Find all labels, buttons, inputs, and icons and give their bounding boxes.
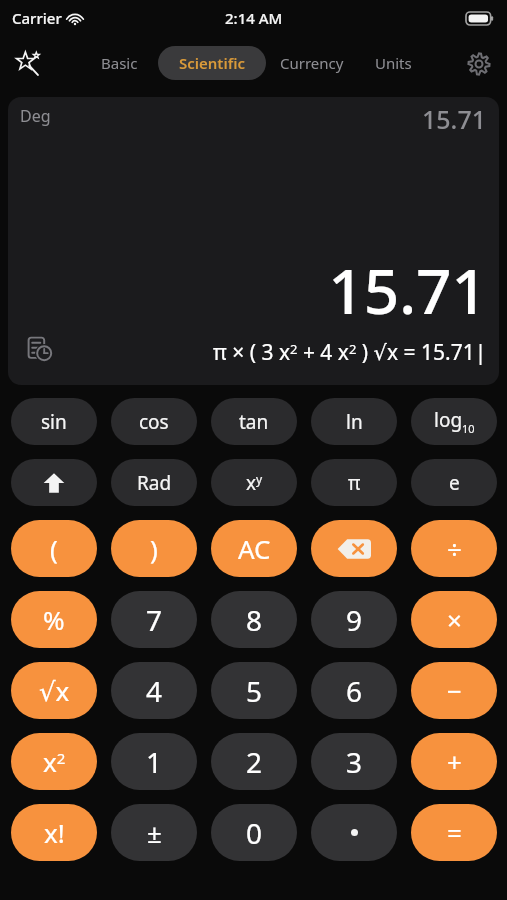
staticText: 6 — [346, 672, 363, 710]
button[interactable]: Settings — [459, 44, 499, 84]
button[interactable]: Backspace — [311, 520, 397, 577]
staticText: 9 — [346, 601, 363, 639]
button[interactable]: 8 — [211, 591, 297, 648]
staticText: sin — [41, 409, 67, 435]
staticText: log10 — [434, 407, 475, 436]
button[interactable]: 3 — [311, 733, 397, 790]
button[interactable]: = — [411, 804, 497, 861]
staticText: Carrier — [12, 8, 62, 28]
button[interactable]: ÷ — [411, 520, 497, 577]
staticText: x! — [44, 815, 65, 850]
staticText: π × ( 3 x2 + 4 x2 ) √x = 15.71| — [213, 338, 487, 367]
button[interactable]: + — [411, 733, 497, 790]
button[interactable]: AC — [211, 520, 297, 577]
button[interactable]: ( — [11, 520, 97, 577]
staticText: xy — [246, 470, 263, 496]
staticText: 1 — [146, 743, 163, 781]
button[interactable]: 6 — [311, 662, 397, 719]
staticText: π — [348, 470, 361, 496]
button[interactable]: π — [311, 459, 397, 506]
staticText: 2 — [246, 743, 263, 781]
staticText: tan — [239, 409, 269, 435]
staticText: Deg — [20, 105, 51, 127]
staticText: Scientific — [179, 53, 246, 73]
button[interactable]: xy — [211, 459, 297, 506]
staticText: Currency — [280, 53, 344, 73]
staticText: 15.71 — [328, 248, 487, 332]
button[interactable]: 2 — [211, 733, 297, 790]
staticText: √x — [39, 673, 70, 708]
button[interactable]: 7 — [111, 591, 197, 648]
staticText: Basic — [101, 53, 138, 73]
staticText: ÷ — [447, 531, 462, 566]
staticText: 7 — [146, 601, 163, 639]
button[interactable]: Currency — [266, 46, 358, 80]
staticText: cos — [139, 409, 169, 435]
button[interactable]: e — [411, 459, 497, 506]
staticText: AC — [238, 531, 271, 566]
button[interactable]: cos — [111, 398, 197, 445]
staticText: 4 — [146, 672, 163, 710]
staticText: Units — [375, 53, 412, 73]
button[interactable]: 9 — [311, 591, 397, 648]
button[interactable]: % — [11, 591, 97, 648]
staticText: ) — [150, 531, 158, 566]
button[interactable]: History — [22, 331, 56, 365]
button[interactable]: sin — [11, 398, 97, 445]
button[interactable]: Units — [358, 46, 428, 80]
button[interactable]: x! — [11, 804, 97, 861]
button[interactable]: Scientific — [158, 46, 266, 80]
button[interactable]: 5 — [211, 662, 297, 719]
staticText: % — [43, 602, 65, 637]
staticText: ln — [346, 409, 363, 435]
button[interactable]: 4 — [111, 662, 197, 719]
button[interactable]: − — [411, 662, 497, 719]
button[interactable]: log10 — [411, 398, 497, 445]
staticText: × — [447, 602, 462, 637]
button[interactable]: tan — [211, 398, 297, 445]
staticText: 8 — [246, 601, 263, 639]
staticText: ± — [147, 815, 162, 850]
button[interactable]: 0 — [211, 804, 297, 861]
button[interactable]: ) — [111, 520, 197, 577]
staticText: ( — [50, 531, 58, 566]
button[interactable]: 1 — [111, 733, 197, 790]
staticText: Rad — [137, 470, 172, 496]
staticText: e — [449, 470, 460, 496]
button[interactable]: Rad — [111, 459, 197, 506]
staticText: x2 — [43, 744, 66, 779]
staticText: 2:14 AM — [225, 8, 283, 28]
staticText: = — [447, 815, 462, 850]
staticText: − — [447, 673, 462, 708]
staticText: 15.71 — [422, 102, 487, 136]
button[interactable]: Magic — [8, 44, 48, 84]
button[interactable]: √x — [11, 662, 97, 719]
button[interactable]: x2 — [11, 733, 97, 790]
staticText: + — [447, 744, 462, 779]
button[interactable] — [311, 804, 397, 861]
button[interactable]: × — [411, 591, 497, 648]
button[interactable]: ± — [111, 804, 197, 861]
button[interactable]: Shift — [11, 459, 97, 506]
staticText: 3 — [346, 743, 363, 781]
staticText: 0 — [246, 814, 263, 852]
staticText: 5 — [246, 672, 263, 710]
button[interactable]: Basic — [80, 46, 158, 80]
button[interactable]: ln — [311, 398, 397, 445]
